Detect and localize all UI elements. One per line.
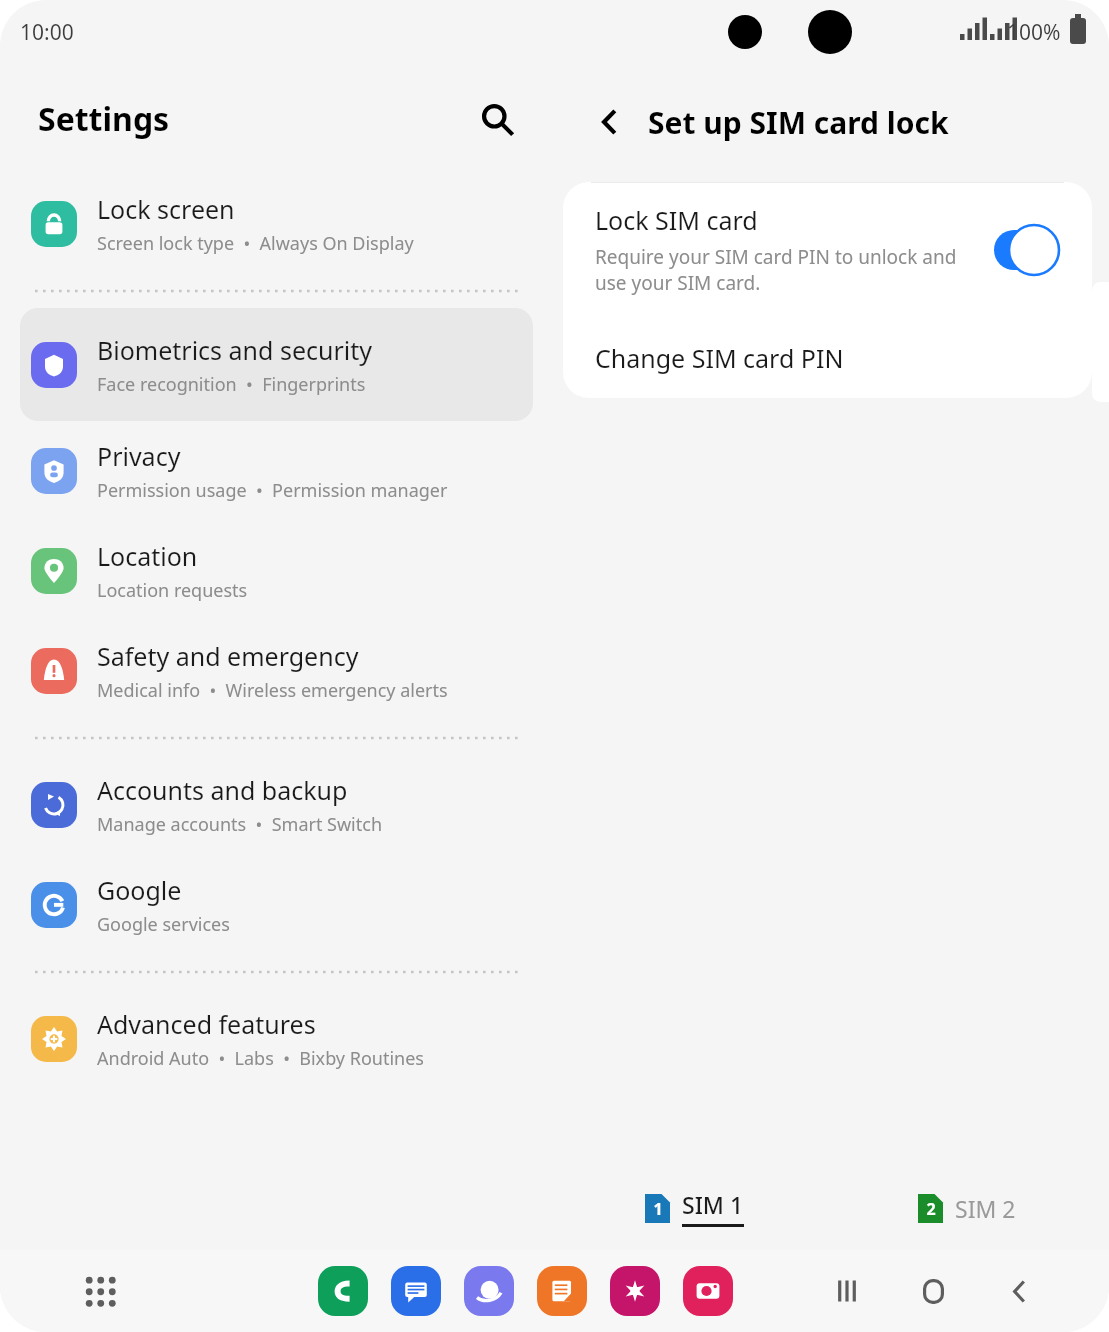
button[interactable]: Change SIM card PIN [563, 317, 1092, 398]
staticText: Set up SIM card lock [648, 102, 949, 143]
button[interactable]: 2 [918, 1184, 1016, 1232]
button[interactable]: 1 [645, 1184, 744, 1232]
staticText: Lock SIM card [595, 203, 758, 237]
staticText: Safety and emergency [97, 639, 359, 673]
staticText: Change SIM card PIN [595, 341, 844, 375]
button[interactable]: messages [391, 1266, 441, 1316]
staticText: Location [97, 539, 198, 573]
button[interactable]: Back [991, 1263, 1047, 1319]
staticText: Google services [97, 912, 230, 937]
button[interactable]: Home [905, 1263, 961, 1319]
staticText: Accounts and backup [97, 773, 348, 807]
button[interactable]: Location [0, 521, 553, 621]
staticText: 1 [653, 1198, 663, 1220]
staticText: Settings [38, 97, 170, 141]
button[interactable]: Safety and emergency [0, 621, 553, 721]
staticText: Android Auto • Labs • Bixby Routines [97, 1046, 424, 1071]
button[interactable]: Lock SIM card [563, 182, 1092, 317]
button[interactable]: Recents [819, 1263, 875, 1319]
button[interactable]: Accounts and backup [0, 755, 553, 855]
staticText: 10:00 [20, 18, 74, 47]
staticText: Biometrics and security [97, 333, 373, 367]
button[interactable]: notes [537, 1266, 587, 1316]
staticText: Face recognition • Fingerprints [97, 372, 366, 397]
button[interactable]: Google [0, 855, 553, 955]
button[interactable]: store [610, 1266, 660, 1316]
button[interactable]: Search [469, 91, 525, 147]
staticText: SIM 1 [682, 1189, 744, 1220]
button[interactable]: Privacy [0, 421, 553, 521]
staticText: Medical info • Wireless emergency alerts [97, 678, 448, 703]
button[interactable]: Apps [74, 1265, 126, 1317]
button[interactable]: phone [318, 1266, 368, 1316]
staticText: Location requests [97, 578, 248, 603]
staticText: 2 [926, 1198, 936, 1220]
staticText: Screen lock type • Always On Display [97, 231, 414, 256]
staticText: Advanced features [97, 1007, 316, 1041]
staticText: Manage accounts • Smart Switch [97, 812, 383, 837]
button[interactable]: internet [464, 1266, 514, 1316]
staticText: Lock screen [97, 192, 235, 226]
button[interactable]: Biometrics and security [20, 308, 533, 421]
staticText: 100% [1007, 18, 1061, 47]
button[interactable]: Lock screen [0, 174, 553, 274]
staticText: SIM 2 [955, 1193, 1016, 1224]
button[interactable]: camera [683, 1266, 733, 1316]
button[interactable]: Advanced features [0, 989, 553, 1089]
staticText: Require your SIM card PIN to unlock and … [595, 244, 980, 296]
button[interactable]: Back [586, 98, 634, 146]
staticText: Privacy [97, 439, 181, 473]
staticText: Permission usage • Permission manager [97, 478, 448, 503]
staticText: Google [97, 873, 182, 907]
